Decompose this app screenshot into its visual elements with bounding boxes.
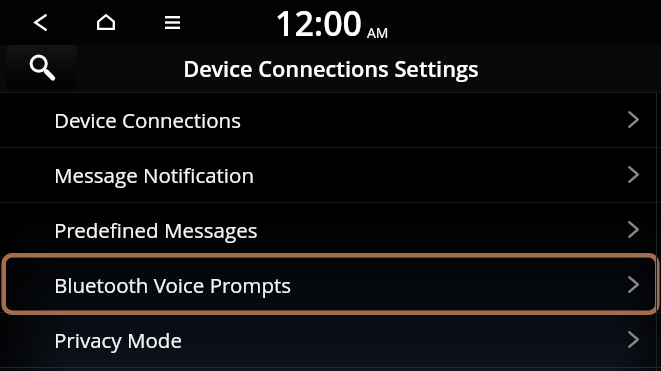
- button[interactable]: Back: [27, 10, 54, 34]
- button[interactable]: Search: [6, 45, 77, 90]
- staticText: AM: [367, 23, 389, 42]
- button[interactable]: Bluetooth Voice Prompts: [0, 258, 661, 312]
- staticText: Message Notification: [54, 161, 254, 189]
- button[interactable]: Privacy Mode: [0, 313, 661, 367]
- button[interactable]: Menu: [159, 10, 186, 34]
- button[interactable]: Predefined Messages: [0, 203, 661, 257]
- staticText: Bluetooth Voice Prompts: [54, 271, 291, 299]
- staticText: Device Connections: [54, 106, 241, 134]
- staticText: Privacy Mode: [54, 326, 182, 354]
- button[interactable]: Home: [92, 10, 119, 34]
- staticText: 12:00: [275, 0, 362, 45]
- staticText: Device Connections Settings: [183, 54, 479, 84]
- staticText: Predefined Messages: [54, 216, 258, 244]
- button[interactable]: Device Connections: [0, 93, 661, 147]
- button[interactable]: Message Notification: [0, 148, 661, 202]
